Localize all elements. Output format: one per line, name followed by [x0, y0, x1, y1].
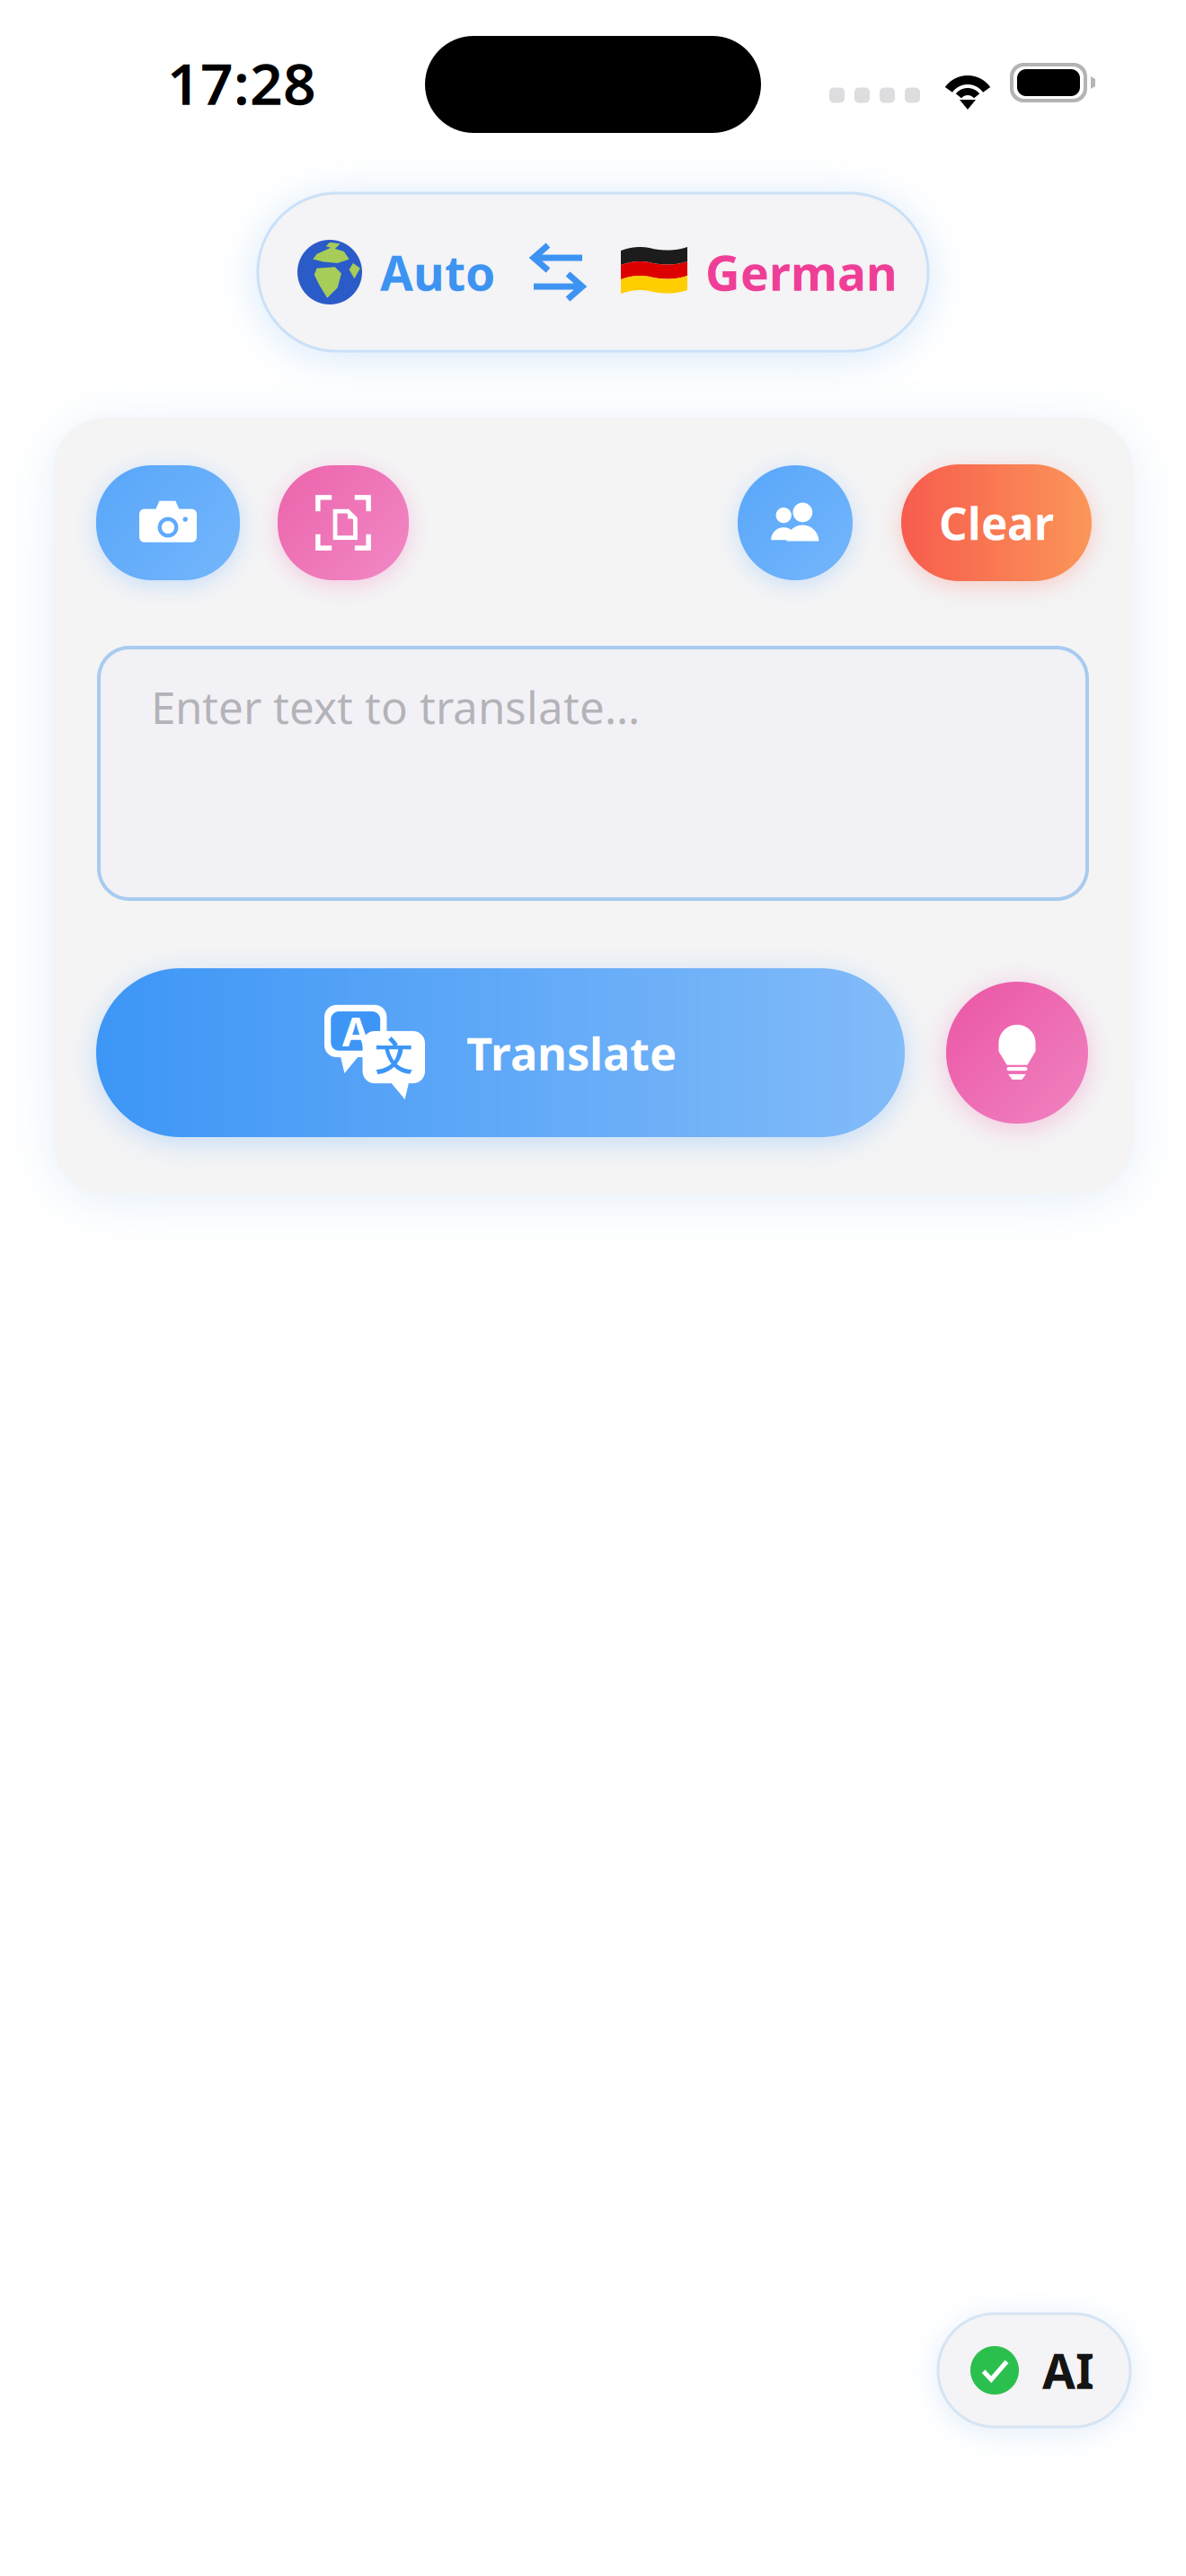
staticText: A: [342, 1005, 369, 1057]
staticText: Clear: [939, 493, 1054, 552]
staticText: Translate: [466, 1022, 677, 1083]
staticText: Enter text to translate...: [151, 677, 640, 736]
button[interactable]: Enter text to translate...: [99, 648, 1087, 899]
button[interactable]: Clear: [901, 464, 1092, 581]
staticText: AI: [1042, 2339, 1094, 2402]
staticText: 文: [375, 1034, 412, 1080]
button[interactable]: Camera: [96, 465, 240, 580]
staticText: Auto: [380, 240, 495, 304]
button[interactable]: AI: [938, 2314, 1130, 2427]
button[interactable]: Conversation mode: [738, 465, 853, 580]
button[interactable]: Swap languages, Auto to German: [258, 193, 928, 351]
button[interactable]: Scan document: [278, 465, 409, 580]
button[interactable]: Suggestions: [946, 982, 1088, 1124]
button[interactable]: A: [96, 968, 905, 1137]
staticText: German: [705, 240, 898, 304]
staticText: 17:28: [167, 44, 316, 121]
